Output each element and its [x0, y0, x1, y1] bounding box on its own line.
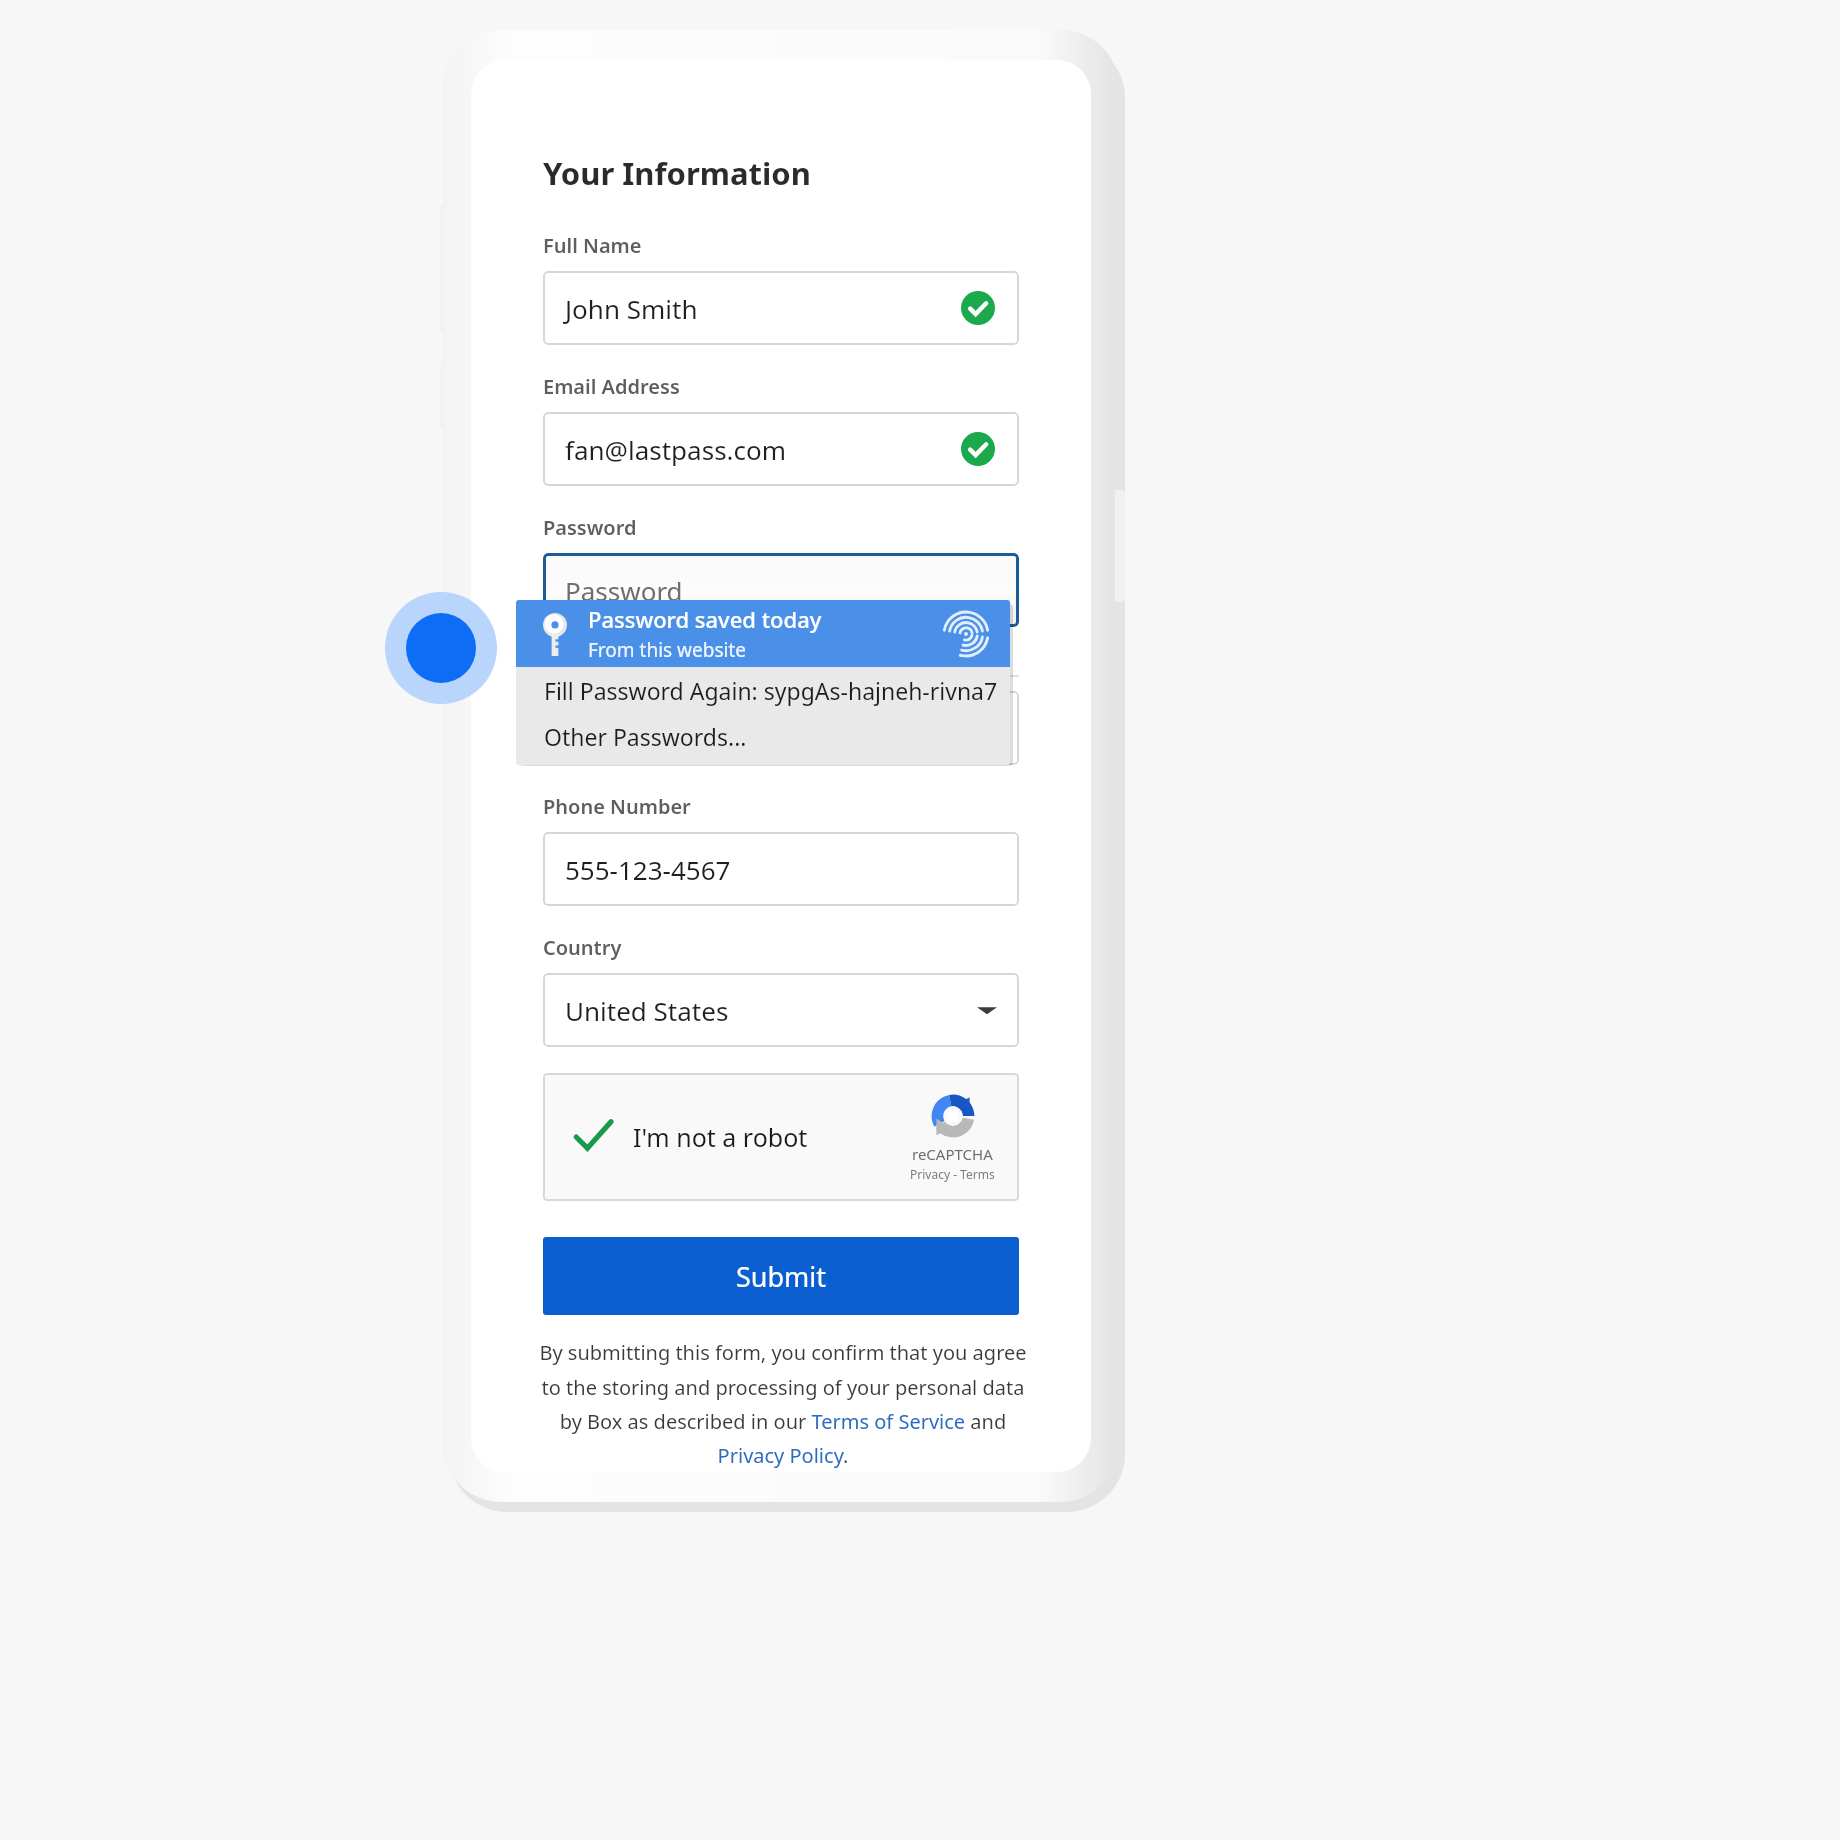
staticText: Other Passwords...: [544, 721, 747, 752]
staticText: John Smith: [565, 291, 698, 326]
button[interactable]: fan@lastpass.com: [543, 412, 1019, 486]
staticText: 555-123-4567: [565, 852, 731, 887]
staticText: By submitting this form, you confirm tha…: [533, 1339, 1033, 1469]
staticText: Submit: [736, 1258, 827, 1295]
staticText: I'm not a robot: [633, 1120, 808, 1154]
button[interactable]: Password: [543, 553, 1019, 627]
staticText: Phone Number: [543, 793, 691, 820]
button[interactable]: 555-123-4567: [543, 832, 1019, 906]
button[interactable]: [543, 691, 1019, 765]
staticText: Fill Password Again: sypgAs-hajneh-rivna…: [544, 675, 998, 706]
staticText: United States: [565, 993, 729, 1028]
staticText: Privacy - Terms: [910, 1166, 995, 1182]
staticText: Country: [543, 934, 622, 961]
other: Fingerprint unlock: [944, 612, 988, 656]
button[interactable]: Other Passwords...: [516, 713, 1010, 759]
staticText: Email Address: [543, 373, 680, 400]
staticText: Password: [565, 573, 683, 608]
staticText: reCAPTCHA: [912, 1144, 993, 1164]
staticText: Full Name: [543, 232, 642, 259]
staticText: Password: [543, 514, 637, 541]
button[interactable]: Tap indicator: [406, 613, 476, 683]
button[interactable]: United States: [543, 973, 1019, 1047]
button[interactable]: Fill Password Again: sypgAs-hajneh-rivna…: [516, 667, 1010, 713]
staticText: Password saved today: [588, 604, 822, 634]
button[interactable]: John Smith: [543, 271, 1019, 345]
button[interactable]: Submit: [543, 1237, 1019, 1315]
button[interactable]: Password saved today: [516, 600, 1010, 667]
button[interactable]: I'm not a robot: [543, 1073, 1019, 1201]
staticText: From this website: [588, 637, 746, 663]
staticText: Your Information: [543, 152, 811, 194]
staticText: fan@lastpass.com: [565, 432, 787, 467]
